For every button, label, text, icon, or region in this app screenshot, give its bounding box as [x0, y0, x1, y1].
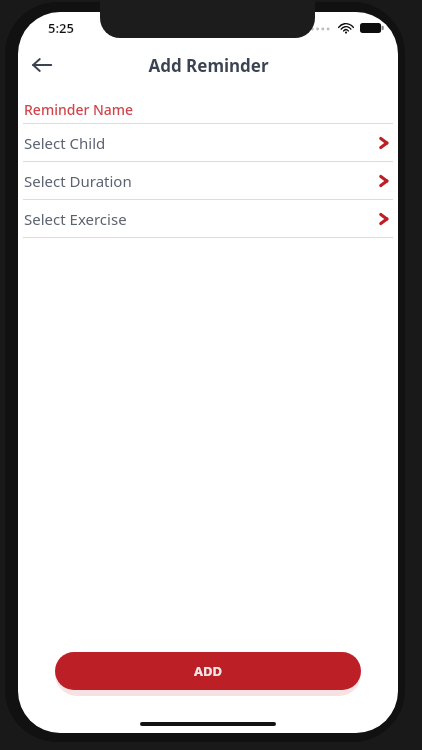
- button[interactable]: Reminder Name: [23, 100, 393, 124]
- button[interactable]: ADD: [55, 652, 361, 690]
- button[interactable]: Back: [22, 45, 62, 85]
- staticText: Add Reminder: [148, 54, 269, 77]
- staticText: Select Duration: [24, 171, 376, 191]
- staticText: Select Child: [24, 133, 376, 153]
- button[interactable]: Select Exercise: [18, 200, 398, 238]
- button[interactable]: Select Duration: [18, 162, 398, 200]
- staticText: ADD: [194, 662, 223, 680]
- staticText: 5:25: [48, 19, 74, 37]
- staticText: Reminder Name: [24, 100, 134, 119]
- button[interactable]: Select Child: [18, 124, 398, 162]
- staticText: Select Exercise: [24, 209, 376, 229]
